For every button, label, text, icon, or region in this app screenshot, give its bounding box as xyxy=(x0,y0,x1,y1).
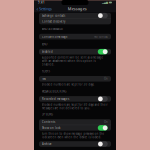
staticText: SEND xyxy=(41,42,47,46)
button[interactable]: Enabled xyxy=(39,49,111,54)
staticText: Contains a message xyxy=(42,35,68,38)
staticText: Blocked numbers are kept for 30 days and… xyxy=(41,103,107,110)
staticText: Text xyxy=(42,77,46,80)
button[interactable]: Show on lock xyxy=(39,125,111,131)
button[interactable]: Archive xyxy=(39,141,111,147)
button[interactable]: Recorded messages xyxy=(39,96,111,102)
staticText: ▂▄▆ xyxy=(102,1,108,4)
staticText: Contents xyxy=(42,120,55,124)
staticText: Contact discovery xyxy=(42,20,65,23)
staticText: ‹ xyxy=(36,5,38,12)
button[interactable]: Turn off xyxy=(97,49,108,55)
staticText: Turn this on to show message previews on… xyxy=(41,132,104,139)
staticText: No contact xyxy=(94,35,108,38)
staticText: Supported content will be sent as a mess… xyxy=(41,56,103,66)
button[interactable]: Contents xyxy=(39,119,111,125)
button[interactable]: Contains a message xyxy=(39,34,111,39)
button[interactable]: Exchange contacts xyxy=(39,13,111,18)
staticText: Show on lock xyxy=(42,126,60,130)
staticText: On xyxy=(104,77,108,80)
button[interactable]: Turn on xyxy=(97,13,108,18)
button[interactable]: Turn on xyxy=(97,96,108,102)
staticText: MESSAGE BLOCKING xyxy=(41,90,66,93)
staticText: Settings xyxy=(39,6,52,11)
staticText: SEND AS MESSAGE xyxy=(41,27,62,31)
staticText: Recorded messages xyxy=(42,97,69,101)
staticText: On xyxy=(104,120,108,124)
button[interactable]: Text xyxy=(39,76,111,82)
button[interactable]: Turn off xyxy=(97,125,108,131)
button[interactable]: ‹ xyxy=(34,5,52,12)
staticText: OPTIONS xyxy=(41,113,52,116)
staticText: Messages xyxy=(68,6,87,11)
staticText: 9:41 xyxy=(38,1,45,4)
staticText: Blocked numbers are kept for 30 days. xyxy=(41,83,94,86)
staticText: Exchange contacts xyxy=(42,14,65,17)
staticText: Enabled xyxy=(42,50,53,53)
button[interactable]: Turn on xyxy=(97,141,108,147)
staticText: FILTERS xyxy=(41,69,49,73)
staticText: Archive xyxy=(42,142,52,146)
button[interactable]: Contact discovery xyxy=(39,19,111,24)
